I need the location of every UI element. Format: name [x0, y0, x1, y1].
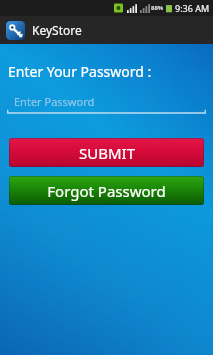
staticText: KeyStore	[32, 22, 82, 38]
button[interactable]: Forgot Password	[9, 176, 204, 205]
staticText: 9:36 AM	[175, 2, 210, 14]
staticText: Enter Password	[14, 94, 95, 109]
staticText: Enter Your Password :	[8, 62, 152, 81]
staticText: Forgot Password	[47, 181, 166, 201]
button[interactable]: Enter Password field	[7, 93, 206, 115]
button[interactable]: SUBMIT	[9, 138, 204, 167]
staticText: 88%	[151, 4, 164, 12]
staticText: SUBMIT	[79, 143, 135, 163]
other: KeyStore app icon	[6, 21, 25, 40]
